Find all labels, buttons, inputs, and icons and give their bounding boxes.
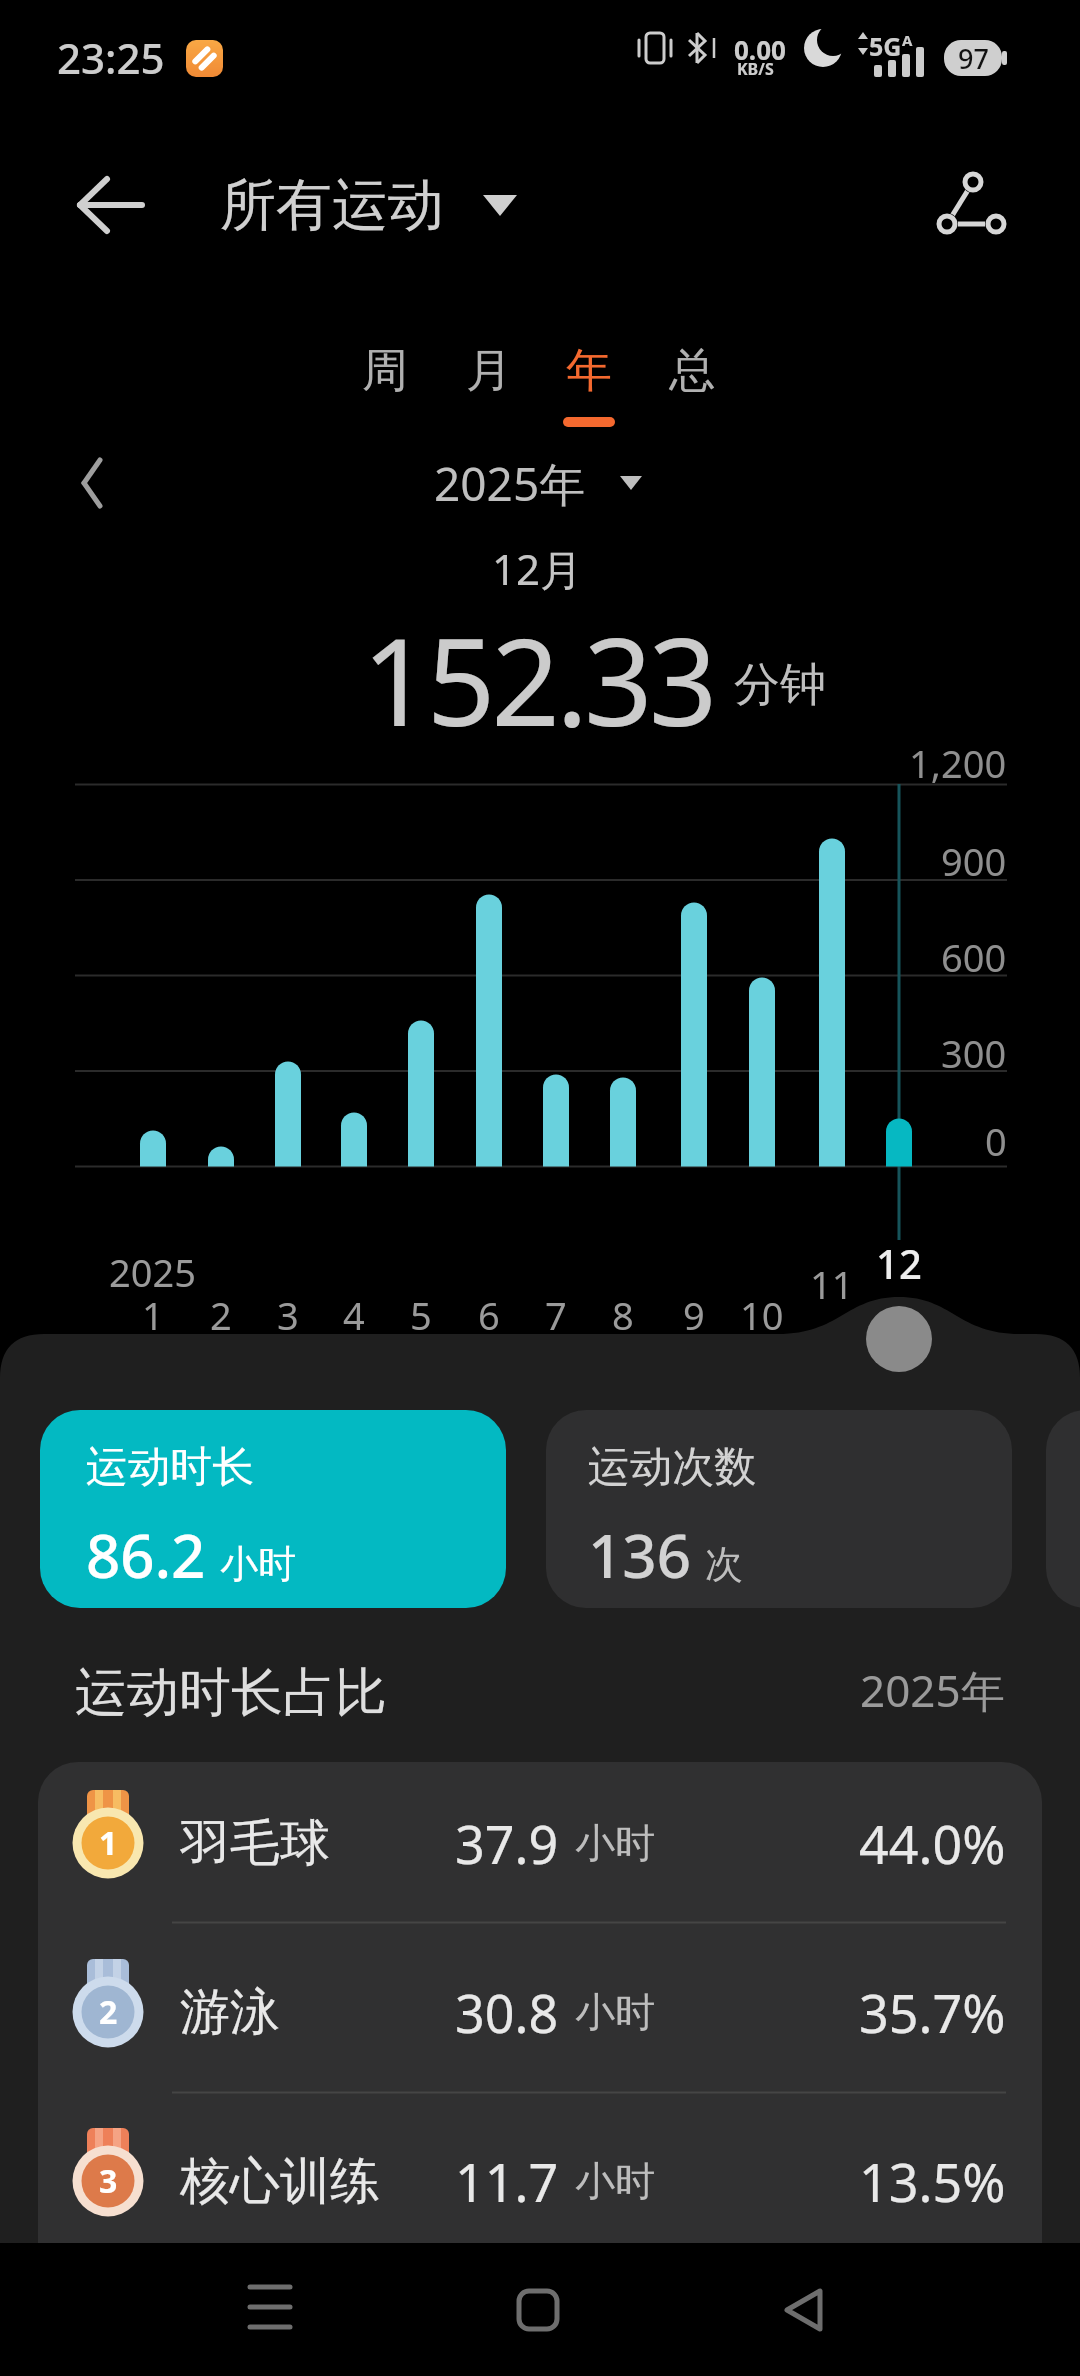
staticText: 2025 xyxy=(109,1246,196,1298)
staticText: 0.00 xyxy=(734,32,786,67)
staticText: 2 xyxy=(210,1289,232,1341)
button[interactable]: 周 xyxy=(0,0,600,120)
button[interactable] xyxy=(60,160,160,250)
staticText: 13.5% xyxy=(859,2146,1006,2217)
staticText: 0 xyxy=(985,1115,1007,1167)
button[interactable]: 月 xyxy=(0,0,600,120)
staticText: 86.2 xyxy=(86,1514,206,1596)
button[interactable]: 2025年 xyxy=(400,450,680,516)
staticText: 运动时长 xyxy=(86,1441,254,1494)
staticText: 23:25 xyxy=(57,29,165,86)
staticText: 月 xyxy=(466,342,512,400)
staticText: 5 xyxy=(410,1289,432,1341)
staticText: 3 xyxy=(277,1289,299,1341)
staticText: 2025年 xyxy=(434,452,586,515)
staticText: 羽毛球 xyxy=(180,1812,330,1875)
staticText: 总 xyxy=(669,342,715,400)
button[interactable] xyxy=(488,2260,588,2360)
button[interactable] xyxy=(920,150,1030,260)
staticText: KB/S xyxy=(737,58,774,80)
staticText: 5G xyxy=(869,29,902,63)
button[interactable]: 所有运动 xyxy=(220,170,530,240)
staticText: 运动次数 xyxy=(588,1441,756,1494)
staticText: 年 xyxy=(566,342,612,400)
staticText: 37.9 xyxy=(455,1808,559,1879)
button[interactable]: 2 xyxy=(38,1928,1042,2096)
staticText: 11 xyxy=(810,1258,854,1310)
staticText: 所有运动 xyxy=(220,170,444,240)
button[interactable]: 总 xyxy=(0,0,600,120)
button[interactable]: 年 xyxy=(0,0,600,120)
staticText: 分钟 xyxy=(734,656,826,714)
staticText: A xyxy=(902,30,913,50)
staticText: 9 xyxy=(683,1289,705,1341)
staticText: 1 xyxy=(99,1821,118,1865)
staticText: 7 xyxy=(545,1289,567,1341)
staticText: 游泳 xyxy=(180,1981,280,2044)
staticText: 900 xyxy=(941,835,1007,887)
staticText: 运动时长占比 xyxy=(75,1660,387,1726)
staticText: 11.7 xyxy=(455,2146,559,2217)
staticText: 30.8 xyxy=(455,1977,559,2048)
staticText: 小时 xyxy=(575,1987,655,2037)
button[interactable] xyxy=(220,2260,320,2360)
staticText: 6 xyxy=(478,1289,500,1341)
staticText: 12月 xyxy=(492,540,583,597)
staticText: 3 xyxy=(99,2159,118,2203)
staticText: 97 xyxy=(958,40,989,77)
staticText: 152.33 xyxy=(362,598,714,728)
staticText: 12 xyxy=(876,1236,922,1290)
button[interactable]: 1 xyxy=(38,1762,1042,1927)
staticText: 核心训练 xyxy=(180,2150,380,2213)
staticText: 小时 xyxy=(575,1818,655,1868)
staticText: 10 xyxy=(740,1289,784,1341)
staticText: 次 xyxy=(705,1540,743,1588)
button[interactable]: 3 xyxy=(38,2097,1042,2265)
staticText: 2025年 xyxy=(860,1660,1005,1720)
staticText: 4 xyxy=(343,1289,365,1341)
staticText: 小时 xyxy=(575,2156,655,2206)
staticText: 小时 xyxy=(220,1540,296,1588)
button[interactable] xyxy=(753,2260,853,2360)
staticText: 1 xyxy=(142,1289,164,1341)
staticText: 周 xyxy=(362,342,408,400)
staticText: 44.0% xyxy=(859,1808,1006,1879)
staticText: 1,200 xyxy=(909,737,1007,789)
button[interactable]: 运动次数 xyxy=(546,1410,1012,1608)
button[interactable] xyxy=(1046,1410,1080,1608)
button[interactable]: 运动时长 xyxy=(40,1410,506,1608)
staticText: 35.7% xyxy=(859,1977,1006,2048)
staticText: 600 xyxy=(941,931,1007,983)
staticText: 8 xyxy=(612,1289,634,1341)
staticText: 2 xyxy=(99,1990,118,2034)
staticText: 300 xyxy=(941,1027,1007,1079)
staticText: 136 xyxy=(588,1514,691,1596)
